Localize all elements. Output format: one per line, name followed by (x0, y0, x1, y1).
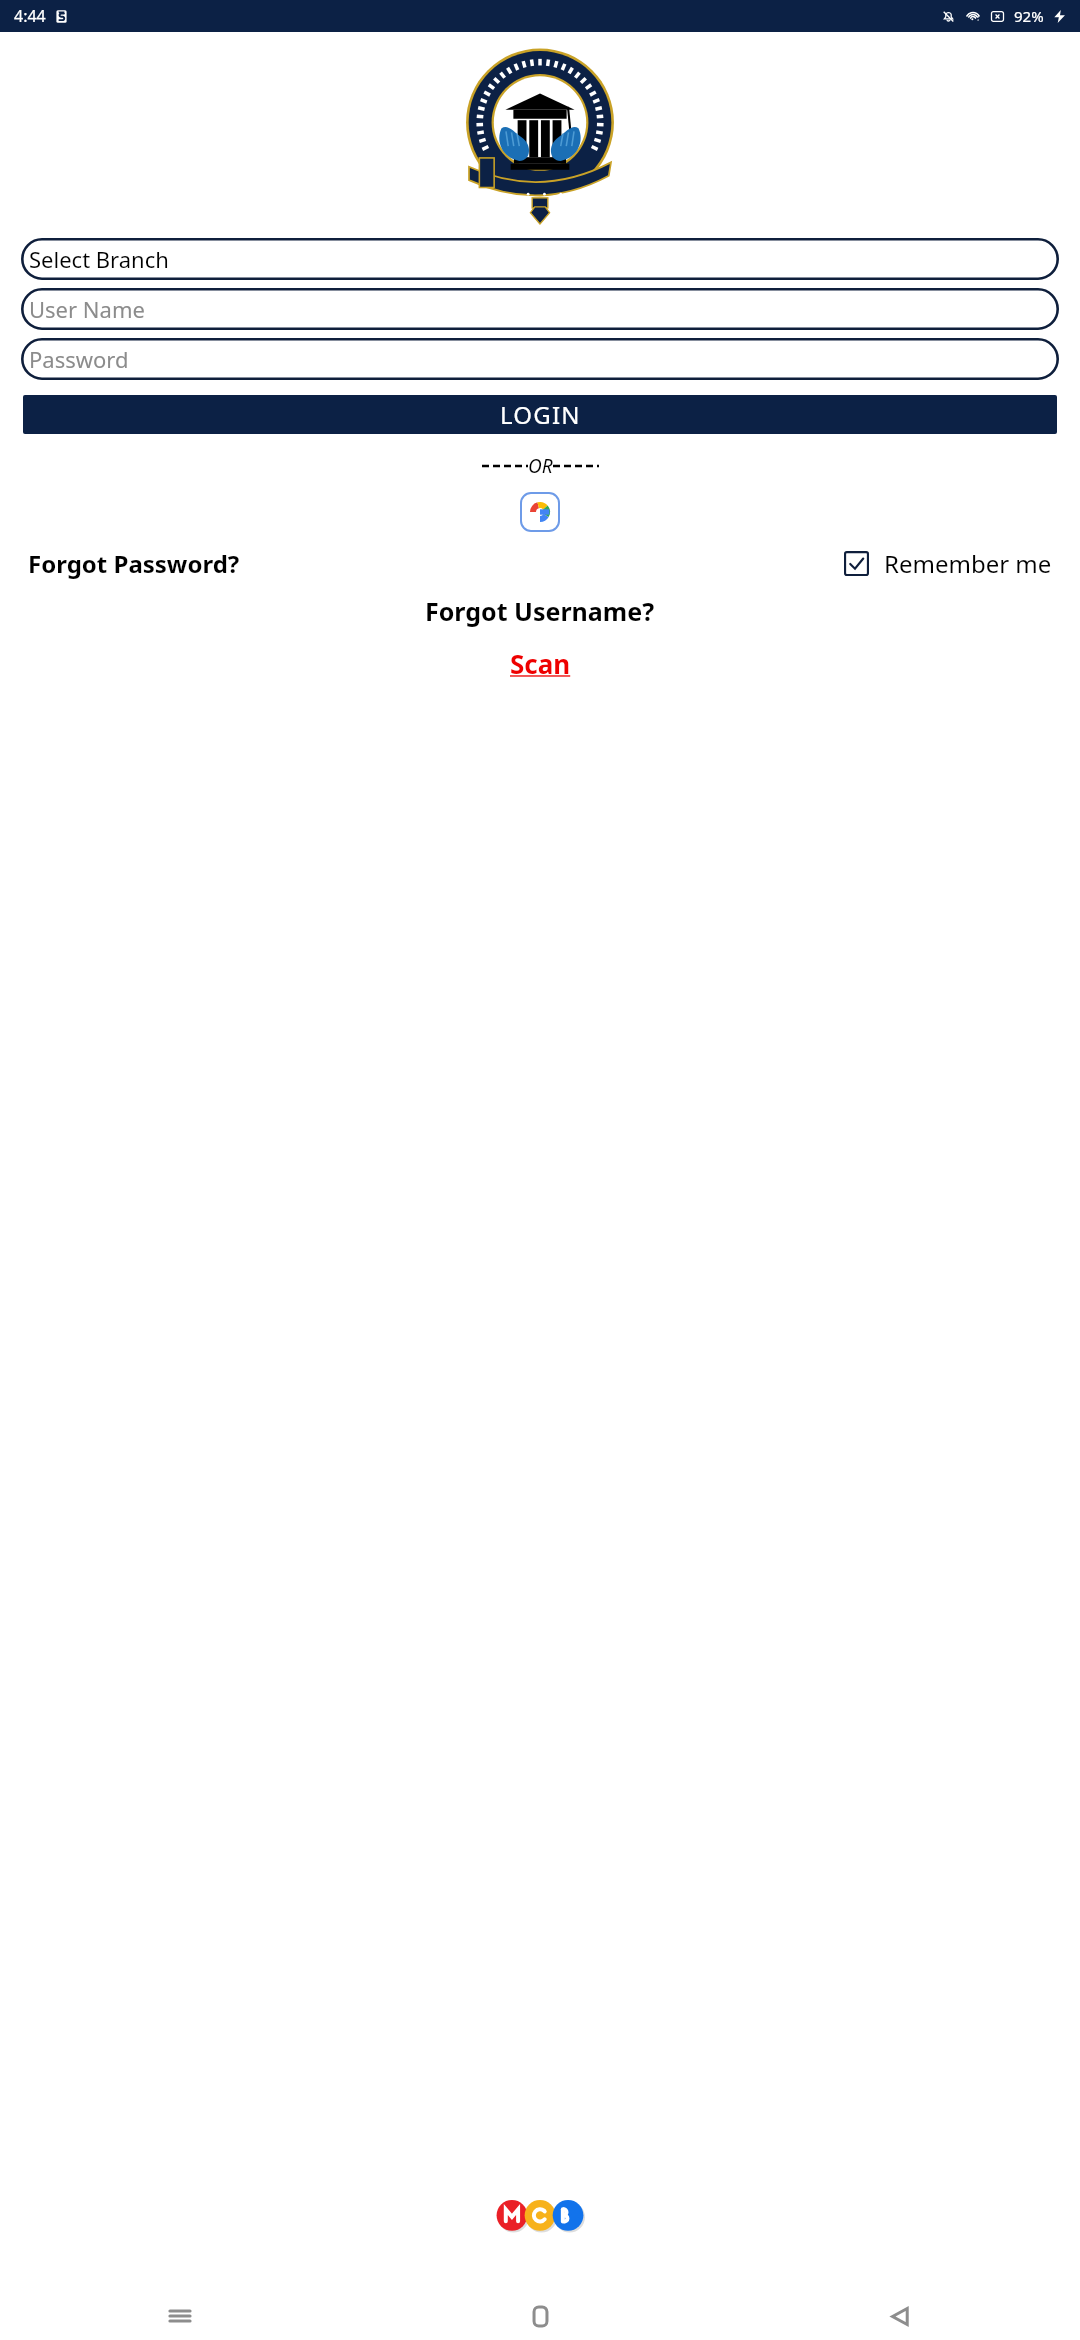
button[interactable]: Sign in with Google (520, 492, 560, 532)
staticText: Password (29, 344, 129, 374)
staticText: Forgot Password? (28, 547, 240, 580)
staticText: Remember me (884, 547, 1052, 580)
button[interactable]: Forgot Password? (28, 544, 240, 583)
staticText: OR (528, 453, 553, 479)
staticText: Forgot Username? (425, 594, 655, 628)
other: Gitanjali Group of Institutions (453, 45, 627, 219)
button[interactable]: Remember me (844, 547, 1052, 580)
staticText: Scan (510, 646, 571, 681)
button[interactable]: Password (21, 338, 1059, 380)
staticText: LOGIN (500, 398, 581, 431)
button[interactable]: Scan (500, 644, 581, 683)
button[interactable]: Recent apps (0, 2292, 360, 2340)
staticText: 92% (1014, 6, 1044, 26)
button[interactable]: User Name (21, 288, 1059, 330)
other: MCB (494, 2200, 586, 2232)
button[interactable]: Back (720, 2292, 1080, 2340)
staticText: 4:44 (14, 5, 46, 27)
button[interactable]: Forgot Username? (0, 592, 1080, 630)
button[interactable]: LOGIN (23, 395, 1057, 434)
button[interactable]: Select Branch (21, 238, 1059, 280)
staticText: Select Branch (29, 244, 169, 274)
staticText: User Name (29, 294, 145, 324)
button[interactable]: Home (360, 2292, 720, 2340)
